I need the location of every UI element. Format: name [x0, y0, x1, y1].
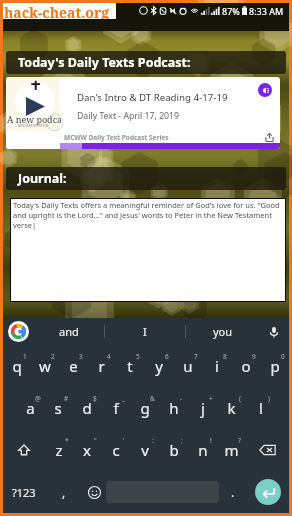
button[interactable]: z [45, 429, 73, 471]
button[interactable]: d [72, 387, 101, 429]
button[interactable]: Voice input [259, 318, 289, 345]
button[interactable]: h [159, 387, 188, 429]
button[interactable]: Shift [3, 429, 45, 471]
staticText: # [64, 394, 69, 403]
staticText: _ [122, 394, 125, 403]
staticText: ) [268, 394, 270, 403]
staticText: g [140, 398, 150, 418]
button[interactable]: s [44, 387, 72, 429]
button[interactable]: u [173, 345, 202, 387]
button[interactable]: p [260, 345, 289, 387]
button[interactable]: v [130, 429, 159, 471]
button[interactable]: i [202, 345, 231, 387]
staticText: 6 [165, 352, 169, 361]
button[interactable]: x [73, 429, 101, 471]
button[interactable]: ?123 [3, 471, 45, 513]
staticText: v [141, 440, 149, 460]
staticText: 8:33 AM [249, 5, 284, 17]
staticText: w [39, 356, 51, 376]
button[interactable]: e [59, 345, 87, 387]
button[interactable]: Cast to device [258, 83, 272, 97]
staticText: l [259, 398, 263, 418]
button[interactable]: and [33, 318, 104, 345]
button[interactable]: l [246, 387, 275, 429]
staticText: f [113, 398, 119, 418]
staticText: r [98, 356, 105, 376]
staticText: 3 [79, 352, 83, 361]
staticText: : [152, 436, 154, 445]
staticText: a [26, 398, 35, 418]
button[interactable]: y [144, 345, 173, 387]
button[interactable]: k [217, 387, 246, 429]
staticText: k [227, 398, 236, 418]
button[interactable]: Today's Daily Texts offers a meaningful … [11, 199, 285, 301]
button[interactable]: Google search [3, 318, 33, 345]
staticText: hack-cheat.org [4, 3, 110, 19]
staticText: 7 [194, 352, 198, 361]
button[interactable]: g [130, 387, 159, 429]
button[interactable]: A new podcast [6, 77, 280, 149]
staticText: t [127, 356, 133, 376]
staticText: " [94, 436, 97, 445]
button[interactable]: , [45, 471, 82, 513]
staticText: p [270, 356, 280, 376]
button[interactable]: f [101, 387, 130, 429]
button[interactable]: t [115, 345, 144, 387]
staticText: j [201, 398, 205, 418]
button[interactable]: b [159, 429, 188, 471]
staticText: 87% [222, 5, 240, 17]
staticText: m [224, 440, 239, 460]
staticText: - [180, 394, 183, 403]
button[interactable]: c [101, 429, 130, 471]
staticText: + [209, 394, 213, 403]
button[interactable]: Enter [255, 479, 281, 505]
button[interactable]: I [105, 318, 185, 345]
staticText: you [213, 324, 233, 339]
button[interactable]: r [87, 345, 115, 387]
staticText: Dan's Intro & DT Reading 4-17-19 [77, 91, 228, 104]
staticText: Today's Daily Texts Podcast: [18, 54, 191, 71]
staticText: e [69, 356, 78, 376]
staticText: 8 [223, 352, 227, 361]
staticText: ? [238, 436, 241, 445]
staticText: z [55, 440, 63, 460]
staticText: MCWW Daily Text Podcast Series [64, 133, 169, 142]
button[interactable]: w [31, 345, 59, 387]
button[interactable]: q [3, 345, 31, 387]
staticText: A new podcast [7, 113, 61, 125]
staticText: n [198, 440, 208, 460]
staticText: y [155, 356, 163, 376]
staticText: h [169, 398, 179, 418]
button[interactable]: n [188, 429, 217, 471]
button[interactable]: Backspace [246, 429, 289, 471]
staticText: x [83, 440, 91, 460]
staticText: $ [93, 394, 97, 403]
staticText: c [112, 440, 120, 460]
button[interactable]: o [231, 345, 260, 387]
staticText: I [143, 324, 147, 339]
staticText: ?123 [12, 485, 36, 500]
staticText: Today's Daily Texts offers a meaningful … [13, 200, 284, 230]
button[interactable]: m [217, 429, 246, 471]
staticText: i [215, 356, 219, 376]
staticText: o [241, 356, 251, 376]
staticText: @ [35, 394, 41, 403]
staticText: ' [123, 436, 125, 445]
staticText: u [183, 356, 193, 376]
staticText: . [231, 484, 235, 500]
button[interactable]: j [188, 387, 217, 429]
other: Share [265, 133, 274, 142]
staticText: MEDITATIVE STYLE [18, 123, 49, 128]
button[interactable]: you [186, 318, 259, 345]
button[interactable]: . [219, 471, 247, 513]
staticText: q [12, 356, 22, 376]
staticText: s [54, 398, 62, 418]
button[interactable]: Emoji [82, 471, 106, 513]
staticText: b [169, 440, 179, 460]
staticText: d [82, 398, 92, 418]
staticText: 9 [252, 352, 256, 361]
staticText: Journal: [18, 170, 67, 187]
staticText: & [150, 394, 155, 403]
button[interactable]: a [16, 387, 44, 429]
